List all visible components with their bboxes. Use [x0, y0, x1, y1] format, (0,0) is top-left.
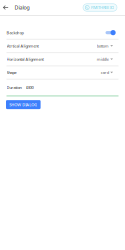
button[interactable]: Backdrop	[0, 26, 125, 40]
staticText: Horizontal Alignment	[6, 57, 43, 62]
button[interactable]: Shape	[0, 66, 125, 80]
staticText: Dialog	[14, 4, 29, 11]
button[interactable]: Back	[0, 0, 11, 15]
staticText: card	[101, 70, 109, 75]
staticText: Vertical Alignment	[6, 43, 38, 49]
staticText: 4300	[25, 85, 33, 90]
button[interactable]: Vertical Alignment	[0, 40, 125, 53]
staticText: Duration	[6, 85, 21, 90]
button[interactable]: Fivethree IO	[83, 4, 117, 11]
staticText: bottom	[97, 43, 109, 49]
staticText: SHOW DIALOG	[9, 102, 37, 107]
button[interactable]: SHOW DIALOG	[6, 100, 41, 109]
staticText: FIVETHREE IO	[91, 5, 114, 10]
staticText: middle	[97, 57, 109, 62]
staticText: Backdrop	[6, 30, 23, 35]
staticText: Shape	[6, 70, 16, 75]
button[interactable]: Horizontal Alignment	[0, 53, 125, 66]
